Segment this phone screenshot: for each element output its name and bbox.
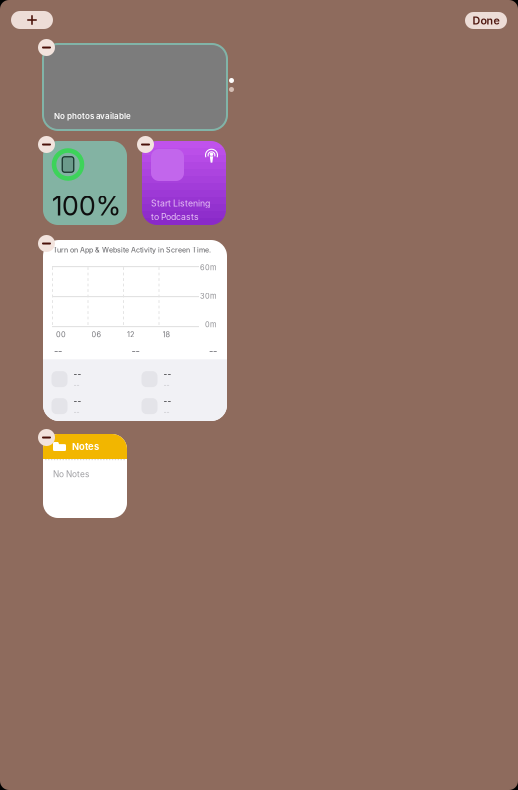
button[interactable]: Remove widget <box>38 39 55 56</box>
staticText: 0m <box>205 320 216 329</box>
staticText: -- <box>163 369 171 379</box>
button[interactable]: Remove widget <box>137 136 154 153</box>
staticText: -- <box>73 408 79 416</box>
button[interactable]: Screen Time widget <box>43 240 227 421</box>
staticText: 60m <box>200 263 216 272</box>
staticText: -- <box>163 408 169 416</box>
button[interactable]: Done <box>465 12 507 29</box>
staticText: Turn on App & Website Activity in Screen… <box>53 246 211 254</box>
button[interactable]: Add widget <box>11 11 53 29</box>
staticText: -- <box>73 369 81 379</box>
staticText: 00 <box>56 330 66 339</box>
staticText: 12 <box>127 330 134 339</box>
button[interactable]: Photos widget <box>43 44 227 130</box>
staticText: Start Listening <box>151 198 210 208</box>
staticText: No Notes <box>53 469 89 479</box>
staticText: No photos available <box>54 111 131 121</box>
button[interactable]: Podcasts widget, Start Listening to Podc… <box>142 141 226 225</box>
staticText: 18 <box>162 330 170 339</box>
staticText: -- <box>73 381 79 389</box>
button[interactable]: Remove widget <box>38 235 55 252</box>
staticText: -- <box>73 396 81 406</box>
staticText: to Podcasts <box>151 211 199 222</box>
button[interactable]: Batteries widget, 100 percent <box>43 141 127 225</box>
staticText: 06 <box>91 330 101 339</box>
button[interactable]: Notes widget, No Notes <box>43 434 127 518</box>
staticText: -- <box>54 345 62 356</box>
staticText: -- <box>209 345 217 356</box>
staticText: 100% <box>52 190 121 222</box>
staticText: -- <box>163 396 171 406</box>
staticText: 30m <box>200 292 216 301</box>
staticText: Notes <box>72 441 99 452</box>
staticText: -- <box>131 345 139 356</box>
staticText: Done <box>472 14 499 27</box>
button[interactable]: Remove widget <box>38 429 55 446</box>
button[interactable]: Remove widget <box>38 136 55 153</box>
staticText: -- <box>163 381 169 389</box>
